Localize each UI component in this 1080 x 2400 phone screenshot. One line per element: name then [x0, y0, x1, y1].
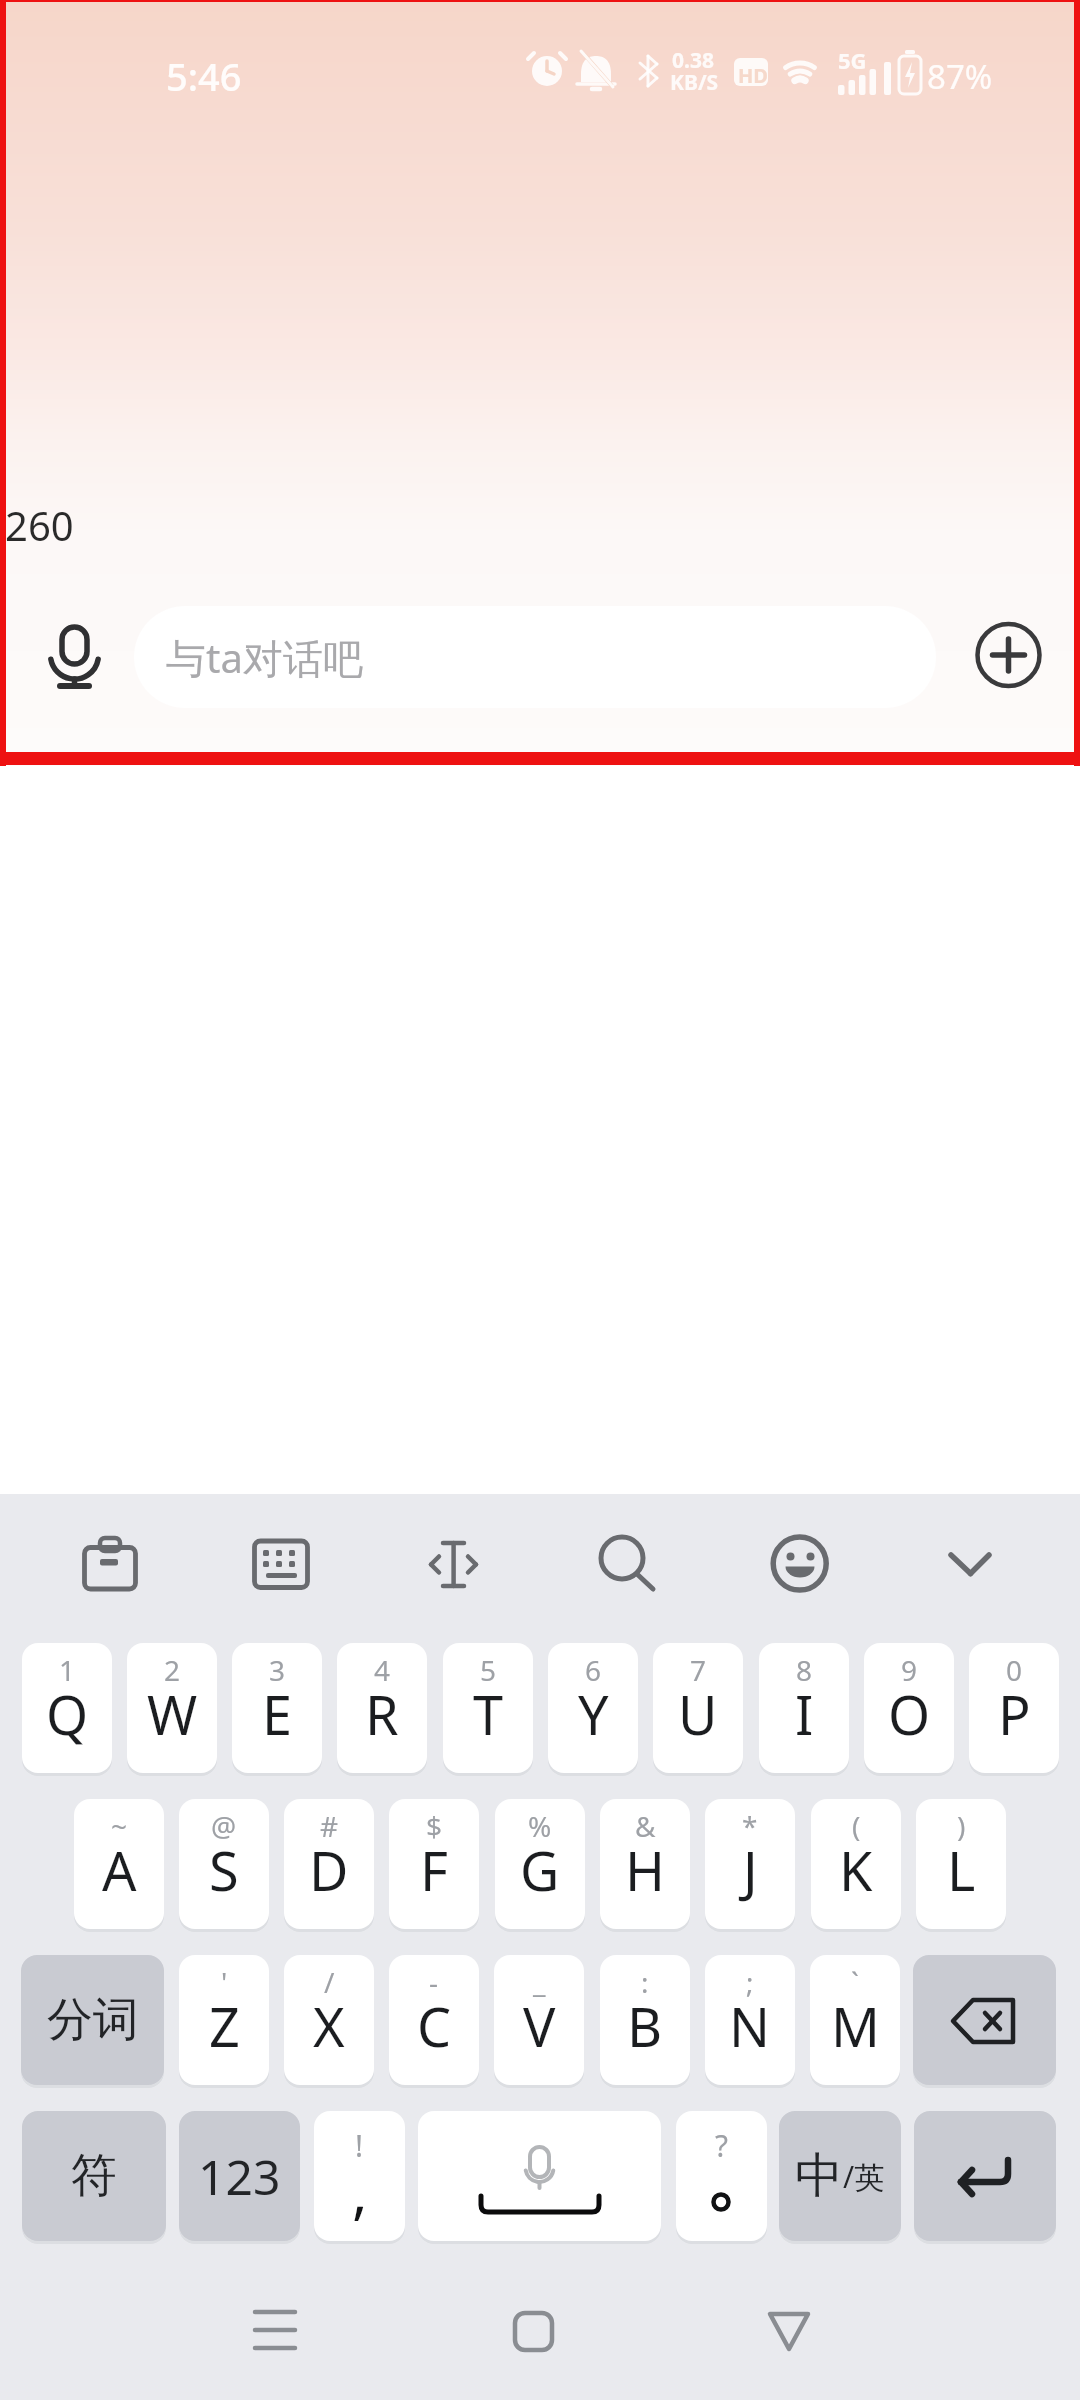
staticText: ?	[715, 2125, 729, 2166]
button[interactable]: 0	[969, 1643, 1059, 1773]
button[interactable]: 8	[759, 1643, 849, 1773]
button[interactable]	[493, 2292, 573, 2372]
staticText: 2	[164, 1651, 181, 1689]
button[interactable]: #	[284, 1799, 374, 1929]
button[interactable]	[40, 615, 110, 700]
button[interactable]	[758, 1523, 838, 1603]
staticText: Y	[578, 1677, 609, 1751]
button[interactable]: 中	[779, 2111, 901, 2241]
button[interactable]: :	[600, 1955, 690, 2085]
button[interactable]: `	[810, 1955, 900, 2085]
button[interactable]: 分词	[21, 1955, 164, 2085]
button[interactable]	[913, 1955, 1056, 2085]
staticText: B	[627, 1989, 663, 2063]
button[interactable]: 123	[179, 2111, 300, 2241]
button[interactable]: )	[916, 1799, 1006, 1929]
staticText: H	[625, 1833, 666, 1907]
button[interactable]: 6	[548, 1643, 638, 1773]
staticText: #	[320, 1807, 339, 1845]
button[interactable]: 3	[232, 1643, 322, 1773]
button[interactable]: 7	[653, 1643, 743, 1773]
staticText: F	[420, 1833, 449, 1907]
button[interactable]: '	[179, 1955, 269, 2085]
staticText: *	[742, 1807, 758, 1845]
staticText: '	[221, 1963, 228, 2001]
staticText: P	[998, 1677, 1031, 1751]
staticText: 5	[480, 1651, 497, 1689]
button[interactable]: (	[811, 1799, 901, 1929]
button[interactable]: $	[389, 1799, 479, 1929]
staticText: ,	[352, 2151, 368, 2230]
staticText: D	[309, 1833, 349, 1907]
staticText: 5G	[838, 45, 867, 75]
staticText: 6	[585, 1651, 602, 1689]
button[interactable]	[749, 2292, 829, 2372]
staticText: /英	[843, 2156, 885, 2197]
button[interactable]	[242, 1523, 322, 1603]
button[interactable]	[418, 2111, 661, 2241]
button[interactable]: 5	[443, 1643, 533, 1773]
button[interactable]: !	[314, 2111, 405, 2241]
staticText: 260	[5, 498, 74, 552]
staticText: 8	[796, 1651, 813, 1689]
button[interactable]: ~	[74, 1799, 164, 1929]
staticText: U	[678, 1677, 718, 1751]
staticText: /	[324, 1963, 335, 2001]
staticText: 5:46	[166, 50, 242, 102]
staticText: %	[528, 1807, 552, 1845]
staticText: !	[355, 2125, 364, 2166]
button[interactable]	[972, 618, 1047, 693]
staticText: 123	[198, 2144, 281, 2209]
staticText: 0.38	[672, 46, 714, 75]
button[interactable]	[414, 1523, 494, 1603]
staticText: -	[429, 1963, 439, 2001]
button[interactable]: ;	[705, 1955, 795, 2085]
button[interactable]: 1	[22, 1643, 112, 1773]
button[interactable]: &	[600, 1799, 690, 1929]
button[interactable]: _	[494, 1955, 584, 2085]
staticText: :	[641, 1963, 649, 2001]
button[interactable]	[70, 1523, 150, 1603]
button[interactable]: 9	[864, 1643, 954, 1773]
button[interactable]: /	[284, 1955, 374, 2085]
button[interactable]: 符	[22, 2111, 166, 2241]
button[interactable]: @	[179, 1799, 269, 1929]
staticText: `	[851, 1963, 859, 2001]
staticText: Z	[209, 1989, 240, 2063]
staticText: W	[147, 1677, 198, 1751]
staticText: 87%	[927, 54, 993, 99]
staticText: KB/S	[670, 68, 719, 97]
button[interactable]	[930, 1523, 1010, 1603]
staticText: 分词	[47, 1991, 139, 2049]
staticText: G	[520, 1833, 560, 1907]
button[interactable]	[235, 2292, 315, 2372]
staticText: N	[729, 1989, 771, 2063]
button[interactable]: *	[705, 1799, 795, 1929]
staticText: )	[957, 1807, 966, 1845]
staticText: I	[795, 1677, 814, 1751]
staticText: K	[839, 1833, 873, 1907]
button[interactable]: 2	[127, 1643, 217, 1773]
staticText: ~	[111, 1807, 128, 1845]
staticText: 4	[374, 1651, 391, 1689]
staticText: 9	[901, 1651, 918, 1689]
button[interactable]: 与ta对话吧	[134, 606, 936, 708]
staticText: 中	[795, 2146, 843, 2206]
staticText: T	[473, 1677, 504, 1751]
staticText: A	[102, 1833, 137, 1907]
button[interactable]	[586, 1523, 666, 1603]
staticText: M	[831, 1989, 880, 2063]
staticText: $	[426, 1807, 443, 1845]
staticText: (	[852, 1807, 861, 1845]
button[interactable]: -	[389, 1955, 479, 2085]
staticText: J	[743, 1833, 758, 1907]
button[interactable]	[914, 2111, 1056, 2241]
staticText: O	[888, 1677, 931, 1751]
staticText: 与ta对话吧	[166, 630, 363, 685]
staticText: _	[533, 1963, 546, 2001]
button[interactable]: 4	[337, 1643, 427, 1773]
button[interactable]: ?	[676, 2111, 767, 2241]
staticText: 1	[59, 1651, 76, 1689]
staticText: V	[523, 1989, 556, 2063]
button[interactable]: %	[495, 1799, 585, 1929]
